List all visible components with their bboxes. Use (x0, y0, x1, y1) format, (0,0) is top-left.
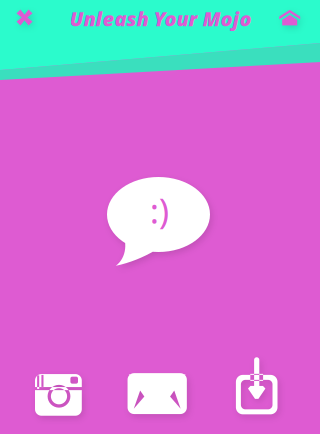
button[interactable]: Share by email (118, 364, 196, 423)
button[interactable]: Share to Instagram (26, 365, 91, 425)
staticText: Unleash Your Mojo (69, 5, 251, 32)
button[interactable]: Unleash Your Mojo (61, 0, 259, 39)
staticText: :) (150, 187, 169, 233)
button[interactable]: Save (227, 348, 286, 423)
button[interactable]: Home (268, 0, 311, 35)
button[interactable]: Close (3, 0, 46, 35)
